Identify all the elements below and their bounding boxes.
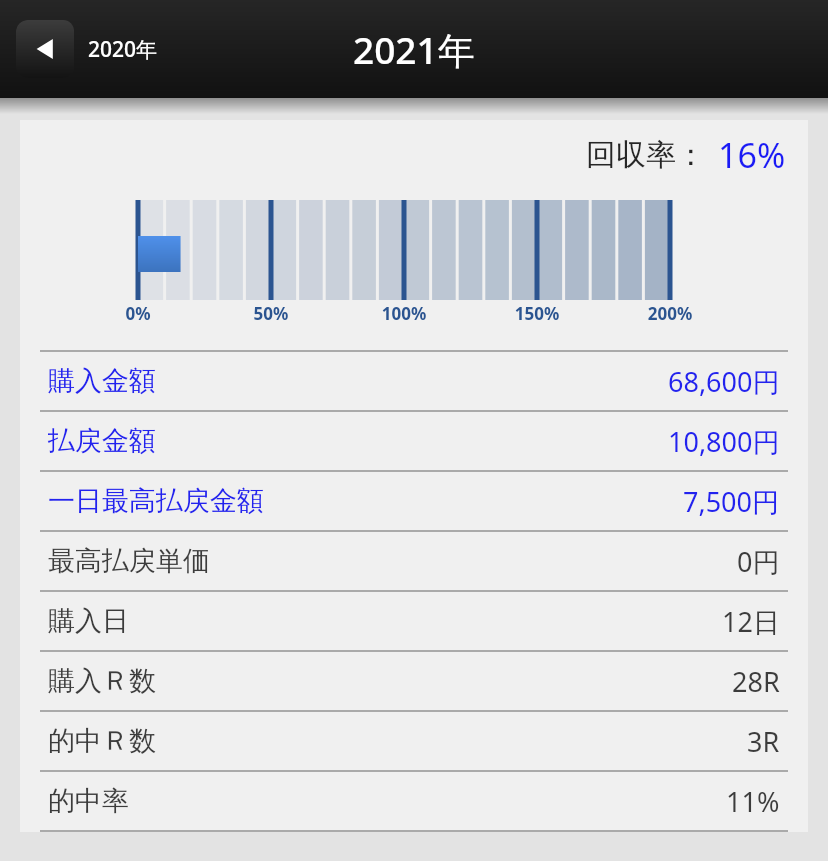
button[interactable]: 購入金額 [20,352,808,410]
staticText: 的中Ｒ数 [48,724,156,758]
button[interactable]: Back [16,20,168,78]
staticText: 0円 [737,543,780,580]
button[interactable]: 的中Ｒ数 [20,712,808,770]
staticText: 100% [364,302,444,322]
staticText: 10,800円 [668,423,780,460]
button[interactable]: 一日最高払戻金額 [20,472,808,530]
staticText: 200% [630,302,710,322]
staticText: 0% [98,302,178,322]
staticText: 68,600円 [668,363,780,400]
button[interactable]: 的中率 [20,772,808,830]
button[interactable]: 購入日 [20,592,808,650]
staticText: 購入Ｒ数 [48,664,156,698]
staticText: 150% [497,302,577,322]
staticText: 払戻金額 [48,424,156,458]
staticText: 11% [726,783,780,820]
staticText: 最高払戻単価 [48,544,210,578]
button[interactable]: 最高払戻単価 [20,532,808,590]
staticText: 28R [732,663,780,700]
staticText: 7,500円 [683,483,780,520]
staticText: 購入金額 [48,364,156,398]
staticText: 購入日 [48,604,129,638]
staticText: 回収率： [586,136,706,174]
staticText: 12日 [722,603,780,640]
button[interactable]: 払戻金額 [20,412,808,470]
staticText: 16% [718,132,786,178]
staticText: 2021年 [353,24,475,75]
staticText: 一日最高払戻金額 [48,484,264,518]
button[interactable]: 購入Ｒ数 [20,652,808,710]
staticText: 2020年 [88,35,158,64]
other: Back [16,20,74,78]
staticText: 的中率 [48,784,129,818]
staticText: 50% [231,302,311,322]
staticText: 3R [747,723,780,760]
